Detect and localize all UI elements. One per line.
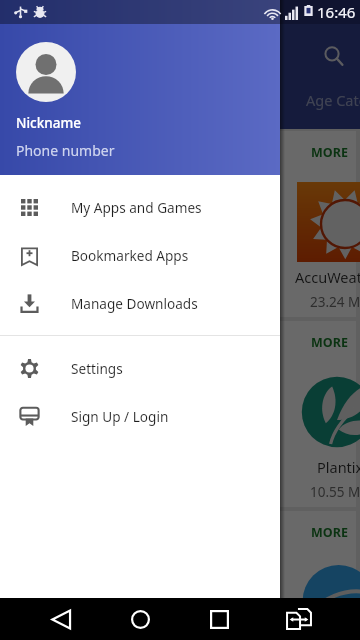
button[interactable]: Search xyxy=(316,38,352,74)
button[interactable]: Switch app xyxy=(275,598,323,640)
button[interactable]: Home xyxy=(116,598,164,640)
staticText: Plantix xyxy=(317,457,360,477)
staticText: Sign Up / Login xyxy=(71,407,169,426)
button[interactable]: Bookmarked Apps xyxy=(0,231,280,279)
button[interactable]: My Apps and Games xyxy=(0,183,280,231)
staticText: 23.24 MB xyxy=(310,293,360,311)
staticText: 16:46 xyxy=(317,2,356,22)
button[interactable]: Sign Up / Login xyxy=(0,392,280,440)
staticText: AccuWeather xyxy=(295,267,360,287)
button[interactable]: MORE xyxy=(4,131,356,317)
staticText: Bookmarked Apps xyxy=(71,246,189,265)
button[interactable]: Settings xyxy=(0,344,280,392)
staticText: Nickname xyxy=(16,114,82,132)
staticText: MORE xyxy=(311,334,348,351)
staticText: 10.55 MB xyxy=(310,483,360,501)
staticText: My Apps and Games xyxy=(71,198,202,217)
staticText: MORE xyxy=(311,524,348,541)
staticText: Apps xyxy=(246,90,281,110)
staticText: Phone number xyxy=(16,141,115,160)
button[interactable]: Manage Downloads xyxy=(0,279,280,327)
button[interactable]: MORE xyxy=(4,321,356,507)
staticText: Settings xyxy=(71,359,123,378)
staticText: MORE xyxy=(311,144,348,161)
button[interactable]: MORE xyxy=(4,511,356,640)
button[interactable]: Recent apps xyxy=(195,598,243,640)
staticText: Age Categories xyxy=(306,90,360,110)
button[interactable]: Back xyxy=(37,598,85,640)
staticText: Manage Downloads xyxy=(71,294,198,313)
